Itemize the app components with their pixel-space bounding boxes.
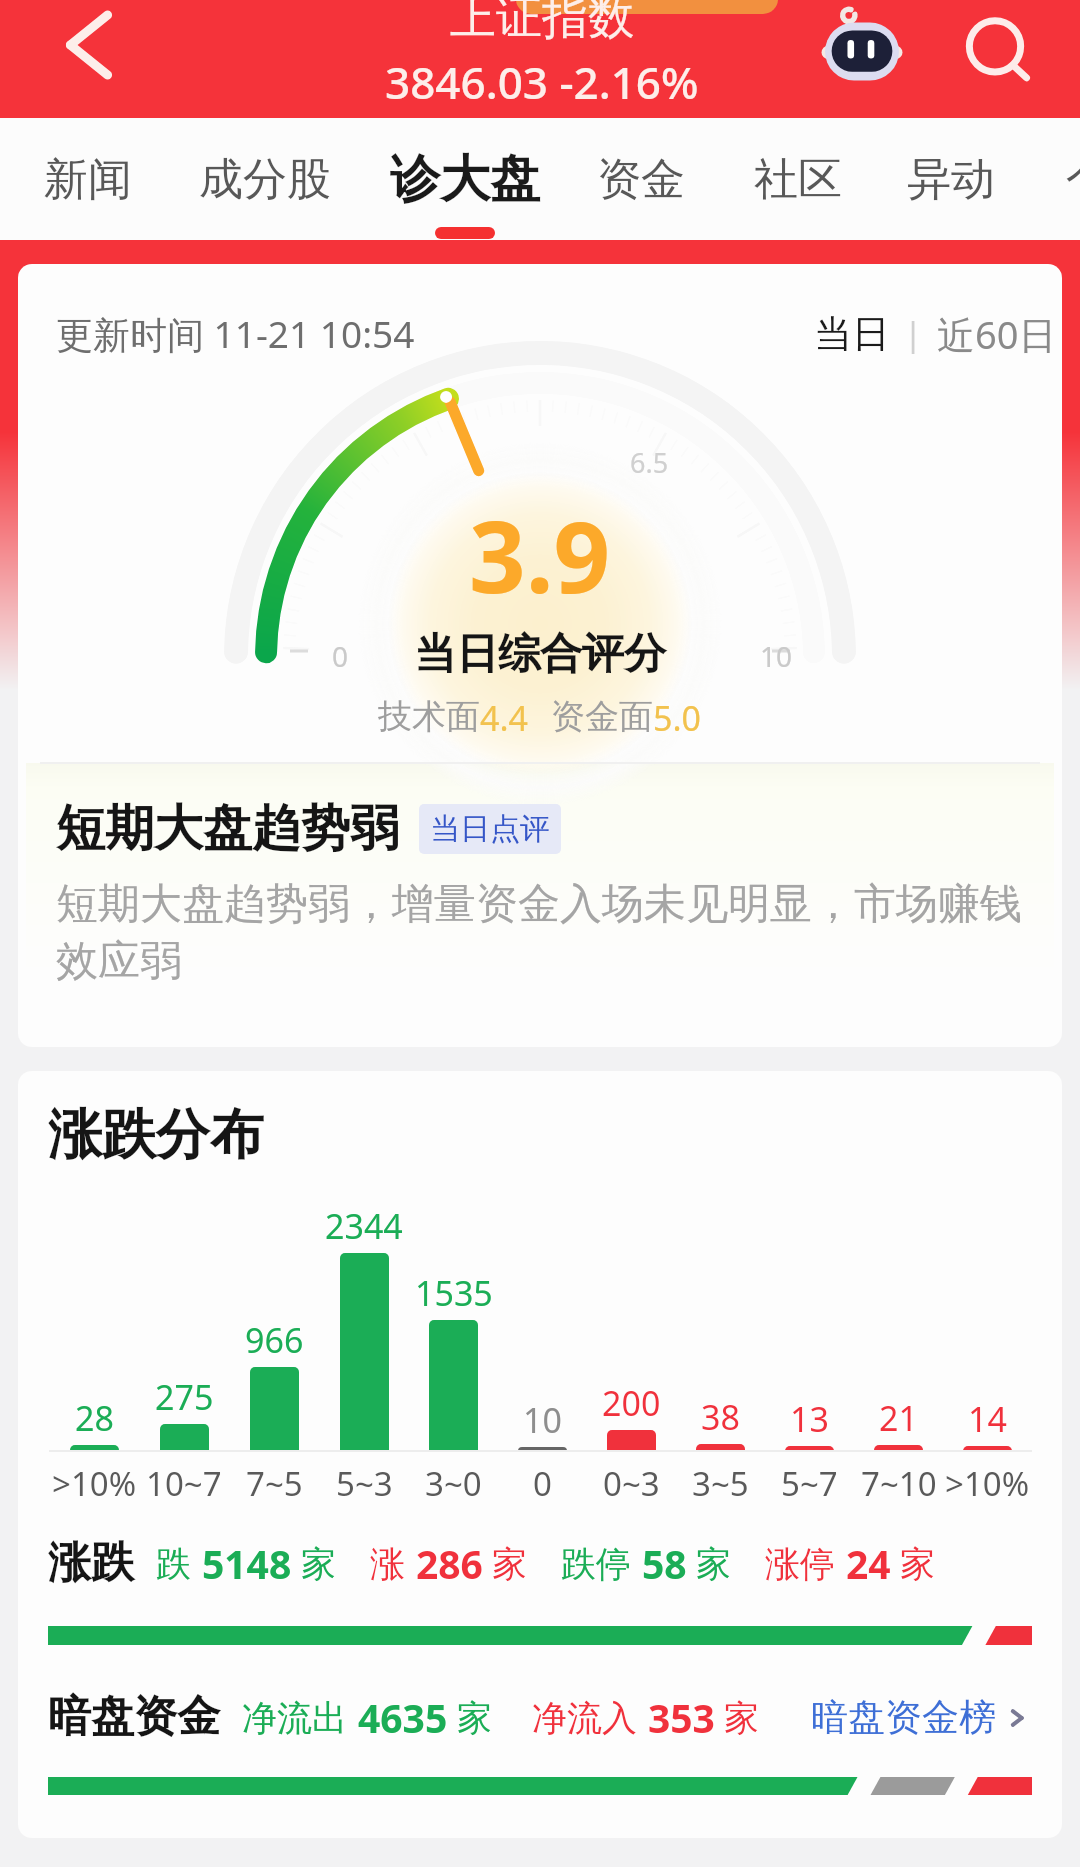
- staticText: 新闻: [44, 152, 132, 207]
- staticText: |: [896, 312, 931, 356]
- staticText: 资金面: [551, 695, 653, 738]
- staticText: 5148: [202, 1537, 292, 1590]
- button[interactable]: 新闻: [30, 118, 146, 240]
- button[interactable]: 资金: [583, 118, 699, 240]
- staticText: 涨: [370, 1542, 405, 1586]
- staticText: 家: [900, 1542, 935, 1586]
- staticText: 个: [1066, 152, 1080, 207]
- staticText: 21: [879, 1395, 918, 1441]
- staticText: 涨跌分布: [48, 1101, 264, 1169]
- button[interactable]: AI assistant: [818, 4, 906, 92]
- staticText: 资金: [597, 152, 685, 207]
- staticText: 28: [75, 1395, 114, 1441]
- staticText: 3846.03 -2.16%: [385, 52, 699, 107]
- button[interactable]: 异动: [893, 118, 1009, 240]
- staticText: 当日综合评分: [414, 628, 666, 681]
- staticText: 966: [245, 1317, 304, 1363]
- button[interactable]: Back: [52, 8, 126, 82]
- staticText: 跌停: [561, 1542, 631, 1586]
- staticText: >10%: [52, 1461, 137, 1506]
- staticText: 当日: [814, 310, 890, 358]
- staticText: 1535: [415, 1270, 493, 1316]
- button[interactable]: 暗盘资金榜: [811, 1694, 1032, 1741]
- staticText: 暗盘资金榜: [811, 1694, 996, 1741]
- staticText: 涨跌: [48, 1536, 134, 1590]
- staticText: 10~7: [146, 1461, 222, 1506]
- staticText: 3.9: [469, 487, 611, 622]
- staticText: 200: [602, 1380, 661, 1426]
- staticText: 58: [642, 1537, 687, 1590]
- staticText: 286: [416, 1537, 483, 1590]
- staticText: 4.4: [480, 695, 529, 741]
- staticText: 上证指数: [450, 0, 634, 47]
- staticText: 家: [696, 1542, 731, 1586]
- staticText: 更新时间 11-21 10:54: [56, 308, 415, 359]
- staticText: 6.5: [630, 444, 669, 481]
- staticText: 14: [968, 1396, 1007, 1442]
- staticText: 家: [492, 1542, 527, 1586]
- staticText: 成分股: [199, 152, 331, 207]
- button[interactable]: Search: [950, 4, 1040, 94]
- staticText: 跌: [156, 1542, 191, 1586]
- staticText: 5~7: [781, 1461, 838, 1506]
- staticText: 当日点评: [430, 810, 550, 848]
- staticText: 353: [648, 1691, 715, 1744]
- staticText: 10: [760, 637, 793, 675]
- staticText: 净流入: [532, 1696, 637, 1740]
- staticText: 38: [701, 1394, 740, 1440]
- staticText: 涨停: [765, 1542, 835, 1586]
- staticText: 家: [301, 1542, 336, 1586]
- button[interactable]: 近60日: [931, 308, 1062, 360]
- staticText: 7~5: [246, 1461, 303, 1506]
- staticText: 净流出: [242, 1696, 347, 1740]
- button[interactable]: 社区: [740, 118, 856, 240]
- staticText: 诊大盘: [390, 148, 540, 211]
- staticText: 3~0: [425, 1461, 482, 1506]
- staticText: 3~5: [692, 1461, 749, 1506]
- staticText: 2344: [325, 1203, 403, 1249]
- staticText: >10%: [945, 1461, 1030, 1506]
- staticText: 24: [846, 1537, 891, 1590]
- staticText: 0: [533, 1461, 552, 1506]
- staticText: 5~3: [336, 1461, 393, 1506]
- staticText: 7~10: [861, 1461, 937, 1506]
- button[interactable]: 成分股: [185, 118, 345, 240]
- staticText: 4635: [358, 1691, 448, 1744]
- staticText: 近60日: [937, 308, 1057, 360]
- staticText: 家: [457, 1696, 492, 1740]
- staticText: 家: [724, 1696, 759, 1740]
- button[interactable]: 个: [1052, 118, 1080, 240]
- staticText: 短期大盘趋势弱: [56, 798, 399, 860]
- staticText: 技术面: [378, 695, 480, 738]
- button[interactable]: 诊大盘: [376, 118, 554, 240]
- staticText: 275: [155, 1374, 214, 1420]
- staticText: 5.0: [653, 695, 702, 741]
- staticText: 暗盘资金: [48, 1690, 220, 1744]
- staticText: 13: [790, 1396, 829, 1442]
- staticText: 异动: [907, 152, 995, 207]
- button[interactable]: 当日: [808, 310, 896, 358]
- staticText: 10: [523, 1397, 562, 1443]
- staticText: 0: [332, 637, 349, 675]
- staticText: 社区: [754, 152, 842, 207]
- staticText: 短期大盘趋势弱，增量资金入场未见明显，市场赚钱效应弱: [56, 878, 1041, 987]
- staticText: 0~3: [603, 1461, 660, 1506]
